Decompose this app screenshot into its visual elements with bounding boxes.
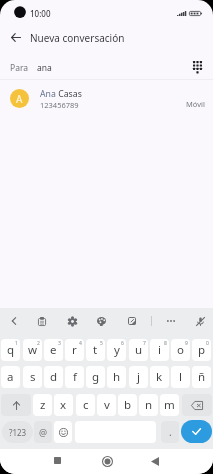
staticText: ?123 — [9, 427, 27, 438]
button[interactable]: Send — [181, 420, 212, 443]
button[interactable]: Previous — [4, 311, 24, 331]
staticText: j — [137, 369, 140, 385]
staticText: A — [16, 92, 23, 106]
staticText: 8 — [164, 340, 167, 347]
button[interactable]: Emoji — [54, 421, 72, 443]
button[interactable]: r — [65, 339, 84, 361]
staticText: 7 — [143, 340, 146, 347]
button[interactable]: s — [23, 366, 42, 388]
button[interactable]: v — [97, 394, 116, 416]
staticText: 3 — [58, 340, 61, 347]
staticText: m — [164, 397, 175, 413]
button[interactable]: Backspace — [182, 394, 212, 416]
staticText: Ana — [40, 88, 56, 100]
staticText: x — [60, 397, 67, 413]
staticText: . — [169, 425, 172, 439]
staticText: g — [92, 369, 100, 385]
button[interactable]: @ — [34, 421, 52, 443]
staticText: ana — [37, 62, 52, 74]
button[interactable]: f — [65, 366, 84, 388]
button[interactable]: a — [1, 366, 20, 388]
button[interactable]: n — [139, 394, 158, 416]
button[interactable]: Home — [97, 451, 117, 471]
staticText: q — [7, 342, 15, 358]
staticText: s — [30, 369, 36, 385]
button[interactable]: ?123 — [2, 421, 33, 443]
staticText: t — [93, 342, 98, 358]
button[interactable]: u — [129, 339, 148, 361]
button[interactable]: Dialpad — [188, 57, 207, 76]
staticText: 2 — [37, 340, 40, 347]
button[interactable]: ñ — [192, 366, 211, 388]
button[interactable]: p — [192, 339, 211, 361]
staticText: l — [179, 369, 182, 385]
button[interactable]: y — [107, 339, 126, 361]
button[interactable]: g — [86, 366, 105, 388]
staticText: Para — [10, 62, 29, 74]
button[interactable]: Theme — [91, 311, 111, 331]
staticText: Nueva conversación — [30, 31, 125, 45]
button[interactable]: Settings — [62, 311, 82, 331]
staticText: f — [73, 369, 77, 385]
button[interactable]: e — [44, 339, 63, 361]
staticText: k — [156, 369, 163, 385]
staticText: 6 — [121, 340, 124, 347]
staticText: @ — [39, 426, 48, 438]
button[interactable]: o — [171, 339, 190, 361]
staticText: 9 — [185, 340, 188, 347]
button[interactable]: i — [150, 339, 169, 361]
button[interactable]: x — [54, 394, 73, 416]
button[interactable]: d — [44, 366, 63, 388]
button[interactable]: t — [86, 339, 105, 361]
staticText: z — [40, 397, 46, 413]
staticText: e — [50, 342, 57, 358]
staticText: h — [113, 369, 121, 385]
button[interactable]: b — [118, 394, 137, 416]
button[interactable]: c — [76, 394, 95, 416]
button[interactable]: l — [171, 366, 190, 388]
button[interactable]: k — [150, 366, 169, 388]
staticText: v — [104, 397, 110, 413]
staticText: 5 — [100, 340, 103, 347]
staticText: 10:00 — [30, 8, 51, 19]
staticText: 4 — [79, 340, 82, 347]
button[interactable]: Voice input off — [190, 311, 210, 331]
staticText: ñ — [198, 369, 206, 385]
button[interactable]: h — [107, 366, 126, 388]
staticText: b — [124, 397, 132, 413]
button[interactable]: . — [161, 421, 179, 443]
staticText: p — [198, 342, 206, 358]
staticText: a — [7, 369, 14, 385]
staticText: i — [158, 342, 161, 358]
button[interactable]: w — [23, 339, 42, 361]
button[interactable]: A — [0, 83, 213, 114]
button[interactable]: More options — [161, 311, 181, 331]
button[interactable]: Clipboard — [32, 311, 52, 331]
button[interactable]: Resize keyboard — [122, 311, 142, 331]
button[interactable]: q — [1, 339, 20, 361]
staticText: Móvil — [186, 99, 205, 109]
staticText: 123456789 — [40, 100, 79, 110]
staticText: d — [50, 369, 58, 385]
staticText: u — [135, 342, 143, 358]
button[interactable]: Recents — [47, 450, 67, 470]
staticText: n — [145, 397, 153, 413]
button[interactable]: Back — [145, 451, 165, 471]
staticText: r — [72, 342, 77, 358]
button[interactable]: Back — [6, 27, 26, 47]
button[interactable]: z — [33, 394, 52, 416]
staticText: c — [83, 397, 89, 413]
staticText: Casas — [56, 88, 82, 100]
staticText: 0 — [206, 340, 209, 347]
staticText: y — [114, 342, 120, 358]
button[interactable]: j — [129, 366, 148, 388]
staticText: 1 — [15, 340, 18, 347]
button[interactable]: m — [160, 394, 179, 416]
button[interactable]: Shift — [1, 394, 31, 416]
staticText: w — [28, 342, 38, 358]
staticText: o — [177, 342, 184, 358]
